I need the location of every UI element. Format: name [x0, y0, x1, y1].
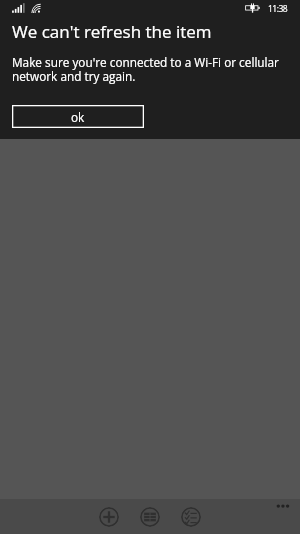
staticText: Make sure you're connected to a Wi-Fi or… [12, 54, 284, 85]
staticText: We can't refresh the item [12, 20, 212, 43]
button[interactable]: Add [99, 507, 119, 527]
button[interactable]: Grid view [140, 507, 160, 527]
staticText: 11:38 [268, 3, 288, 15]
button[interactable]: ok [12, 105, 144, 128]
staticText: ok [71, 109, 85, 125]
button[interactable]: More options [269, 498, 297, 516]
button[interactable]: Select items [181, 507, 201, 527]
